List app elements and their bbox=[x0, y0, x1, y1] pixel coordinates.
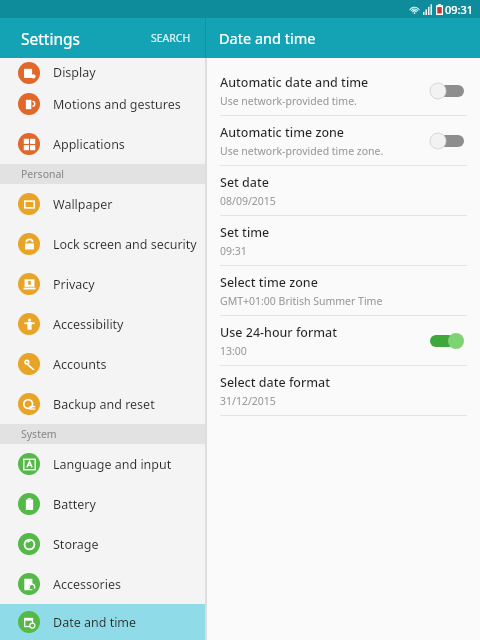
staticText: 31/12/2015 bbox=[220, 394, 276, 408]
button[interactable]: Select date format bbox=[207, 366, 480, 415]
button[interactable]: Accessories bbox=[0, 564, 205, 604]
staticText: Privacy bbox=[53, 276, 95, 293]
staticText: GMT+01:00 British Summer Time bbox=[220, 294, 383, 308]
button[interactable]: SEARCH bbox=[143, 25, 199, 51]
staticText: Select date format bbox=[220, 374, 331, 391]
staticText: Accessories bbox=[53, 576, 122, 593]
button[interactable]: Use 24-hour format bbox=[424, 326, 470, 356]
staticText: Storage bbox=[53, 536, 99, 553]
staticText: Set time bbox=[220, 224, 270, 241]
staticText: Display bbox=[53, 64, 96, 81]
staticText: Battery bbox=[53, 496, 96, 513]
staticText: Personal bbox=[21, 167, 65, 181]
button[interactable]: Battery bbox=[0, 484, 205, 524]
button[interactable]: Wallpaper bbox=[0, 184, 205, 224]
staticText: 09:31 bbox=[220, 244, 247, 258]
staticText: Select time zone bbox=[220, 274, 318, 291]
staticText: Accounts bbox=[53, 356, 107, 373]
button[interactable]: Select time zone bbox=[207, 266, 480, 315]
staticText: Backup and reset bbox=[53, 396, 155, 413]
button[interactable]: Set time bbox=[207, 216, 480, 265]
button[interactable]: Storage bbox=[0, 524, 205, 564]
button[interactable]: Automatic date and time bbox=[424, 76, 470, 106]
staticText: SEARCH bbox=[151, 31, 191, 45]
staticText: Automatic time zone bbox=[220, 124, 345, 141]
staticText: Motions and gestures bbox=[53, 96, 181, 113]
button[interactable]: Accounts bbox=[0, 344, 205, 384]
staticText: Use network-provided time zone. bbox=[220, 144, 384, 158]
staticText: Applications bbox=[53, 136, 125, 153]
staticText: Accessibility bbox=[53, 316, 124, 333]
button[interactable]: Automatic time zone bbox=[207, 116, 480, 165]
staticText: System bbox=[21, 427, 57, 441]
button[interactable]: Backup and reset bbox=[0, 384, 205, 424]
button[interactable]: Automatic date and time bbox=[207, 66, 480, 115]
button[interactable]: Automatic time zone bbox=[424, 126, 470, 156]
button[interactable]: Lock screen and security bbox=[0, 224, 205, 264]
button[interactable]: Display bbox=[0, 58, 205, 84]
staticText: Date and time bbox=[53, 614, 137, 631]
staticText: 08/09/2015 bbox=[220, 194, 276, 208]
button[interactable]: Motions and gestures bbox=[0, 84, 205, 124]
staticText: Use network-provided time. bbox=[220, 94, 357, 108]
staticText: Wallpaper bbox=[53, 196, 113, 213]
staticText: Use 24-hour format bbox=[220, 324, 338, 341]
button[interactable]: Accessibility bbox=[0, 304, 205, 344]
staticText: Date and time bbox=[219, 28, 316, 48]
staticText: Settings bbox=[21, 28, 80, 49]
button[interactable]: Use 24-hour format bbox=[207, 316, 480, 365]
staticText: 13:00 bbox=[220, 344, 247, 358]
button[interactable]: Language and input bbox=[0, 444, 205, 484]
staticText: Language and input bbox=[53, 456, 172, 473]
button[interactable]: Privacy bbox=[0, 264, 205, 304]
button[interactable]: Date and time bbox=[0, 604, 205, 640]
staticText: Automatic date and time bbox=[220, 74, 369, 91]
button[interactable]: Set date bbox=[207, 166, 480, 215]
staticText: 09:31 bbox=[445, 2, 474, 17]
button[interactable]: Applications bbox=[0, 124, 205, 164]
staticText: Lock screen and security bbox=[53, 236, 197, 253]
staticText: Set date bbox=[220, 174, 269, 191]
